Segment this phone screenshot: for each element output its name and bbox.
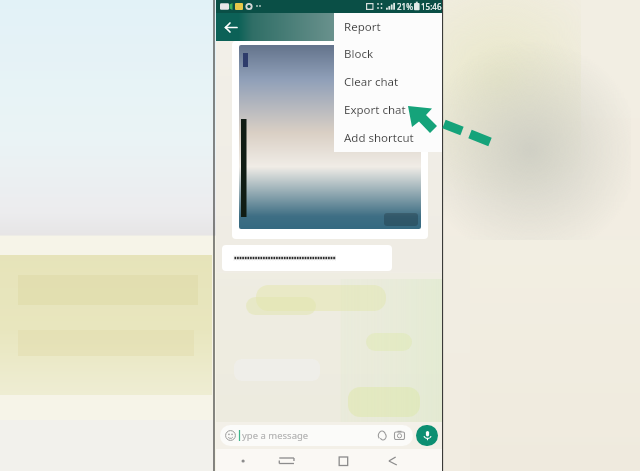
staticText: 22:52 — [357, 143, 378, 154]
staticText: Block — [344, 46, 374, 62]
button[interactable]: Camera — [393, 429, 406, 442]
button[interactable]: ype a message — [220, 425, 413, 446]
staticText: Add shortcut — [344, 130, 414, 146]
button[interactable]: Clear chat — [334, 68, 442, 96]
staticText: 21% — [397, 1, 413, 12]
button[interactable]: Export chat — [334, 96, 442, 124]
staticText: 22:52 — [371, 128, 392, 139]
button[interactable]: Report — [334, 13, 442, 40]
staticText: ype a message — [242, 429, 309, 442]
staticText: Report — [344, 19, 381, 35]
button[interactable]: Add shortcut — [334, 124, 442, 152]
button[interactable]: Attach — [376, 429, 389, 442]
staticText: 15:46 — [421, 1, 442, 12]
staticText: Clear chat — [344, 74, 399, 90]
button[interactable]: Block — [334, 40, 442, 68]
staticText: Export chat — [344, 102, 406, 118]
button[interactable]: Back — [216, 13, 244, 41]
button[interactable]: Voice message — [416, 425, 438, 446]
